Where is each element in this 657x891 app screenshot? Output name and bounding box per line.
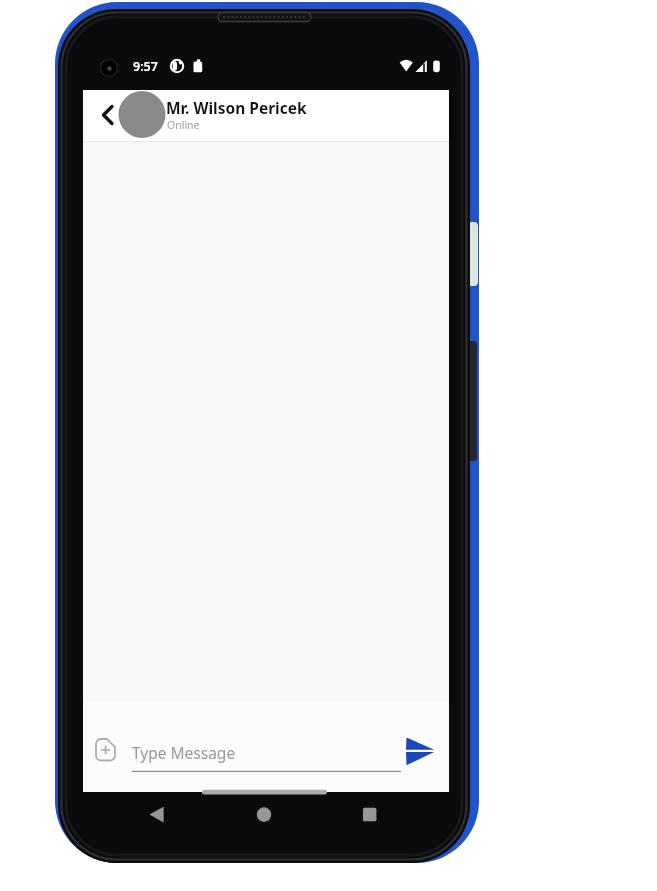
staticText: Type Message (132, 742, 236, 763)
button[interactable] (118, 90, 318, 141)
button[interactable] (90, 734, 121, 765)
button[interactable]: Type Message (128, 738, 396, 774)
button[interactable] (93, 96, 121, 134)
button[interactable] (140, 798, 174, 832)
staticText: Online (167, 118, 200, 132)
button[interactable] (400, 733, 440, 771)
button[interactable] (247, 798, 281, 832)
staticText: 9:57 (133, 58, 158, 75)
staticText: Mr. Wilson Pericek (166, 97, 307, 118)
button[interactable] (353, 798, 387, 832)
